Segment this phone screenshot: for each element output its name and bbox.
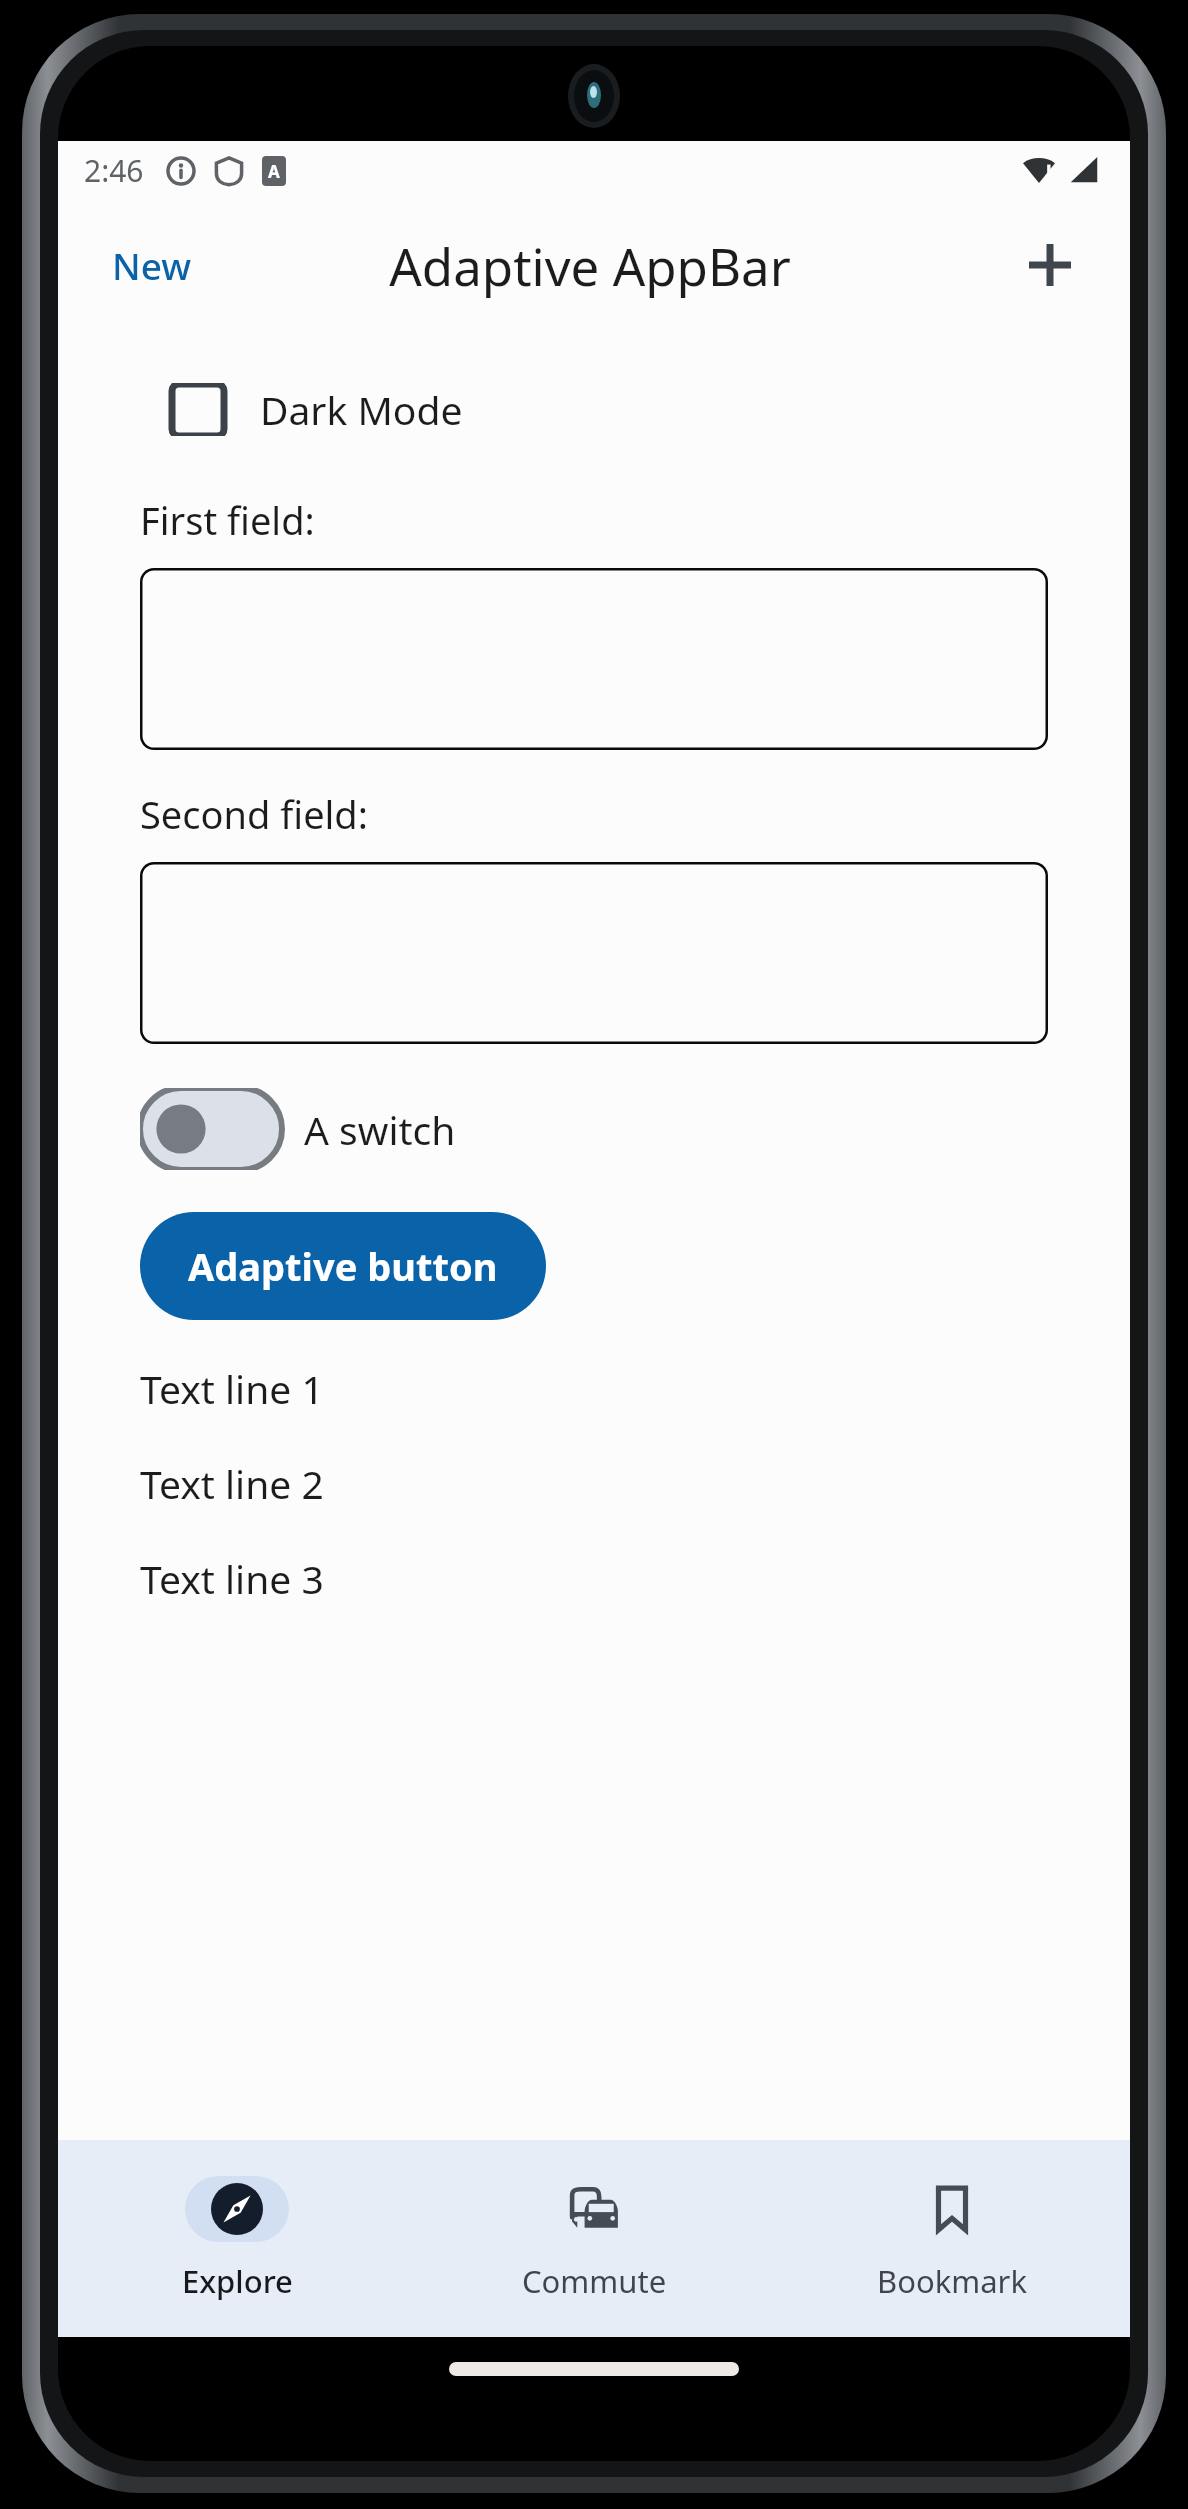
staticText: A <box>268 160 280 183</box>
staticText: Bookmark <box>877 2260 1027 2302</box>
staticText: Text line 2 <box>140 1457 324 1510</box>
staticText: Commute <box>522 2260 667 2302</box>
button[interactable]: New <box>98 230 206 300</box>
staticText: Text line 3 <box>140 1552 324 1605</box>
button[interactable]: Bookmark <box>773 2140 1130 2337</box>
button[interactable]: Adaptive button <box>140 1212 546 1320</box>
staticText: Text line 1 <box>140 1362 324 1415</box>
button[interactable]: A switch <box>140 1088 456 1170</box>
button[interactable]: Explore <box>58 2140 416 2337</box>
staticText: A switch <box>304 1103 456 1156</box>
button[interactable]: Add <box>1008 223 1092 307</box>
staticText: First field: <box>140 494 315 546</box>
staticText: Adaptive AppBar <box>389 231 791 300</box>
staticText: Explore <box>182 2260 293 2302</box>
button[interactable]: Commute <box>416 2140 773 2337</box>
staticText: Dark Mode <box>260 383 463 436</box>
staticText: New <box>112 240 192 290</box>
staticText: Second field: <box>140 788 368 840</box>
staticText: 2:46 <box>84 150 144 191</box>
button[interactable] <box>140 568 1048 750</box>
button[interactable] <box>140 862 1048 1044</box>
button[interactable]: Dark Mode <box>140 383 479 436</box>
staticText: Adaptive button <box>188 1240 498 1292</box>
